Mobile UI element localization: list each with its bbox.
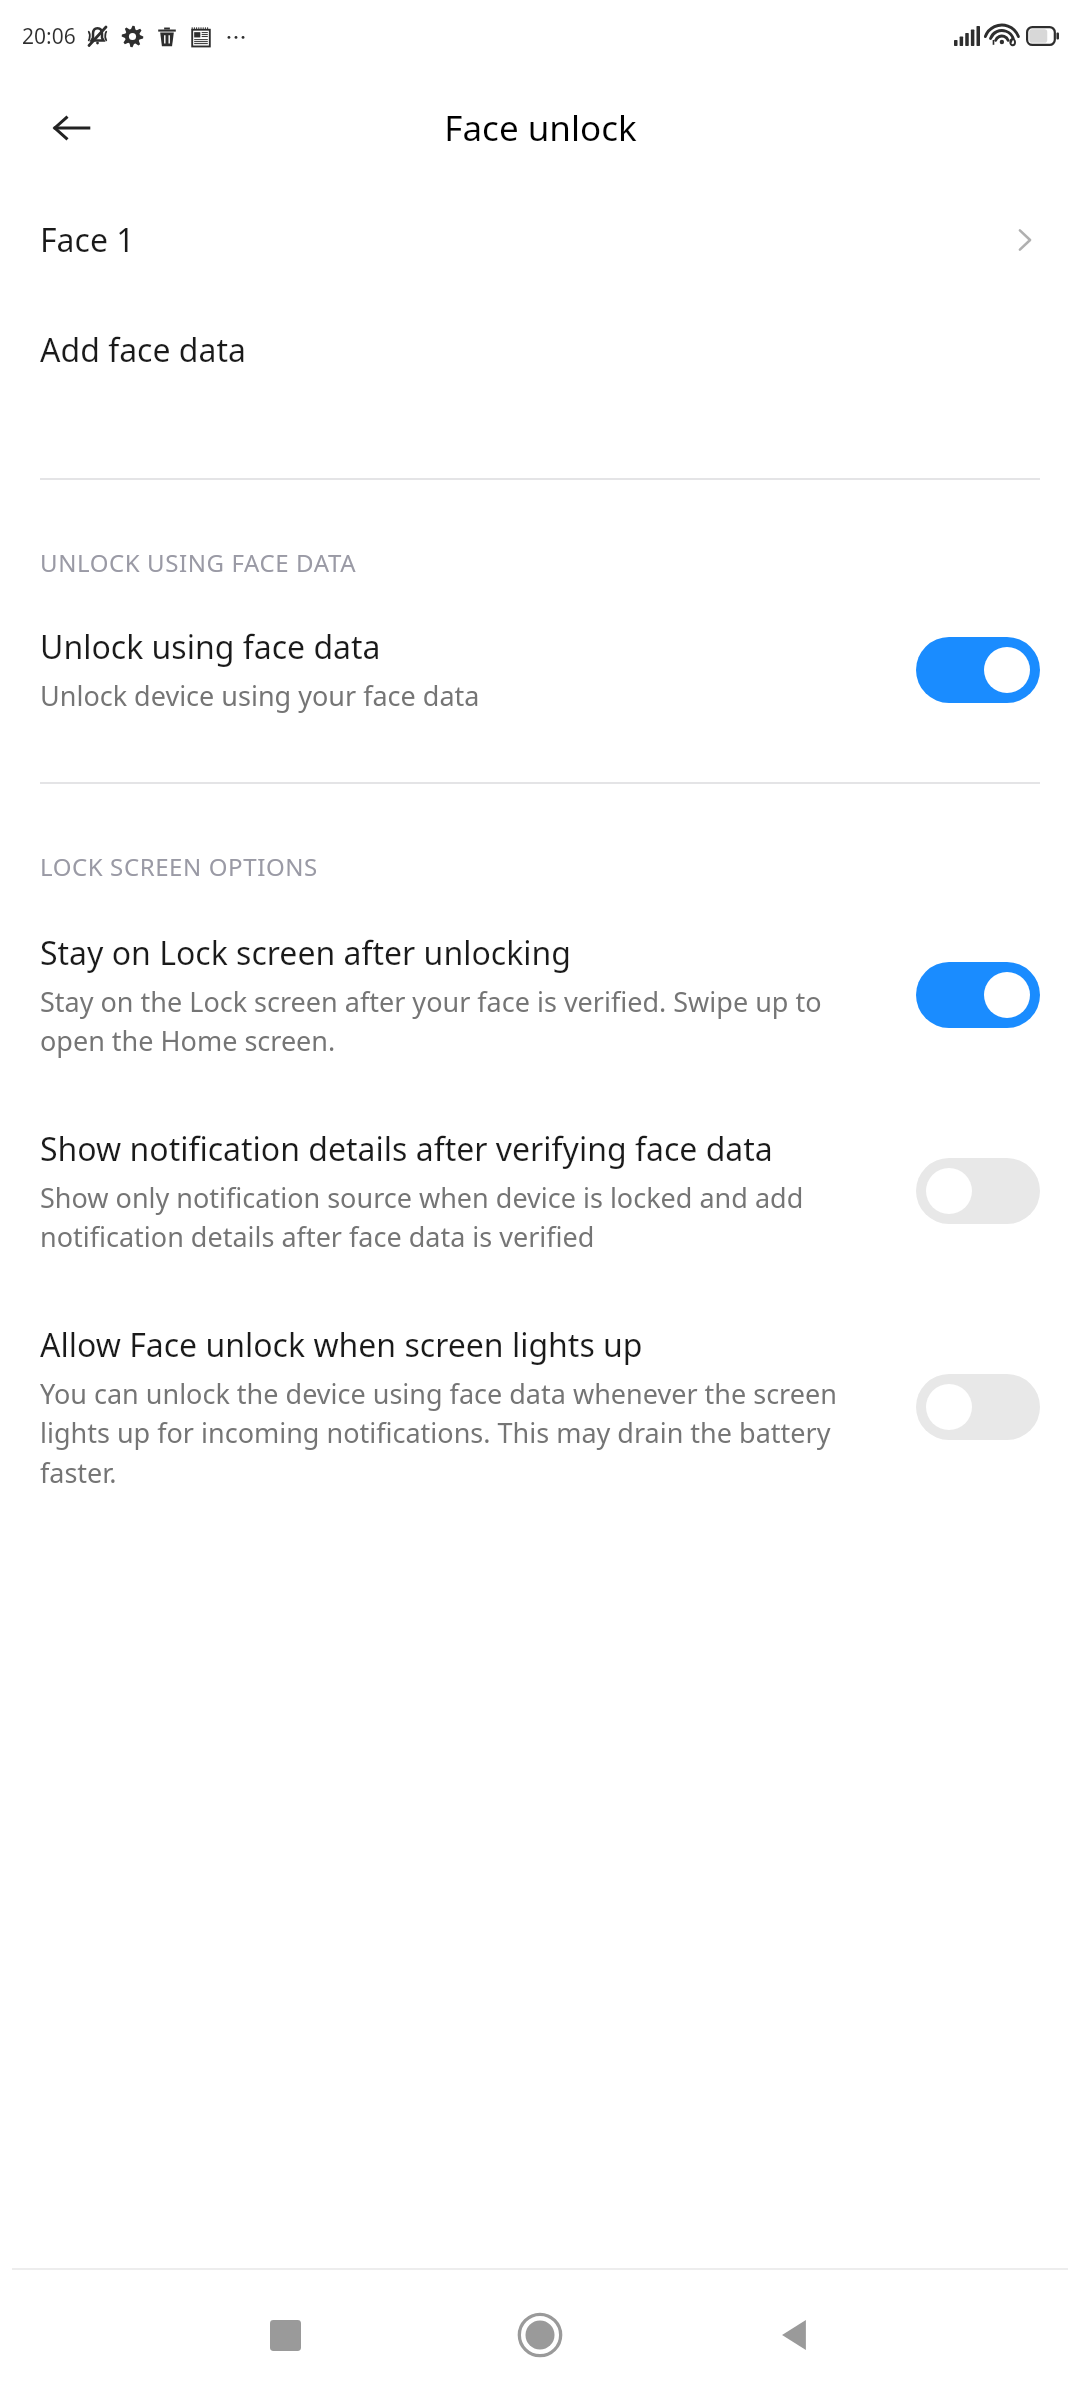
button[interactable]: Off	[916, 1158, 1040, 1224]
staticText: Allow Face unlock when screen lights up	[40, 1323, 643, 1367]
button[interactable]: On	[916, 637, 1040, 703]
button[interactable]: Face 1	[0, 184, 1080, 296]
button[interactable]: Unlock using face data	[0, 613, 1080, 726]
staticText: 20:06	[22, 22, 76, 51]
staticText: Show notification details after verifyin…	[40, 1127, 773, 1171]
staticText: UNLOCK USING FACE DATA	[40, 546, 357, 579]
staticText: Face 1	[40, 218, 1010, 262]
staticText: LOCK SCREEN OPTIONS	[40, 850, 318, 883]
button[interactable]: Back	[40, 96, 104, 160]
button[interactable]: Home	[495, 2290, 585, 2380]
button[interactable]: Stay on Lock screen after unlocking	[0, 919, 1080, 1071]
staticText: Stay on the Lock screen after your face …	[40, 983, 888, 1059]
button[interactable]: Back	[750, 2290, 840, 2380]
button[interactable]: Allow Face unlock when screen lights up	[0, 1311, 1080, 1503]
button[interactable]: Add face data	[0, 296, 1080, 404]
staticText: Face unlock	[444, 104, 637, 152]
staticText: Unlock device using your face data	[40, 677, 480, 714]
staticText: Add face data	[40, 328, 246, 372]
button[interactable]: Off	[916, 1374, 1040, 1440]
button[interactable]: On	[916, 962, 1040, 1028]
staticText: Unlock using face data	[40, 625, 381, 669]
staticText: Stay on Lock screen after unlocking	[40, 931, 571, 975]
staticText: You can unlock the device using face dat…	[40, 1375, 888, 1491]
button[interactable]: Recent apps	[240, 2290, 330, 2380]
button[interactable]: Show notification details after verifyin…	[0, 1115, 1080, 1267]
staticText: Show only notification source when devic…	[40, 1179, 888, 1255]
